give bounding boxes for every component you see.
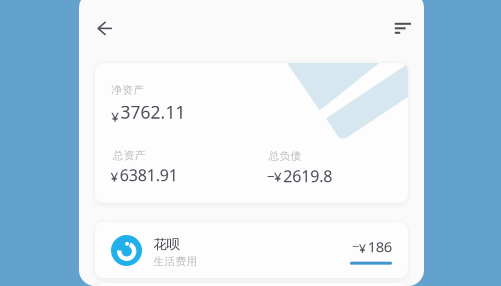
staticText: 6381.91 — [120, 164, 178, 186]
staticText: ¥ — [359, 241, 366, 256]
staticText: ¥ — [111, 168, 119, 185]
staticText: − — [267, 167, 275, 185]
staticText: 净资产 — [111, 83, 144, 97]
staticText: 3762.11 — [120, 101, 185, 124]
staticText: 2619.8 — [283, 165, 332, 187]
staticText: 花呗 — [153, 236, 179, 253]
staticText: 186 — [368, 237, 392, 256]
button[interactable]: Filter — [381, 6, 425, 50]
staticText: 总资产 — [113, 149, 146, 162]
button[interactable]: Back — [83, 6, 127, 50]
staticText: 总负债 — [269, 149, 302, 162]
staticText: ¥ — [111, 108, 119, 125]
staticText: 生活费用 — [153, 255, 197, 268]
staticText: ¥ — [274, 168, 282, 185]
staticText: − — [352, 237, 360, 255]
button[interactable]: 花呗 — [95, 222, 408, 278]
